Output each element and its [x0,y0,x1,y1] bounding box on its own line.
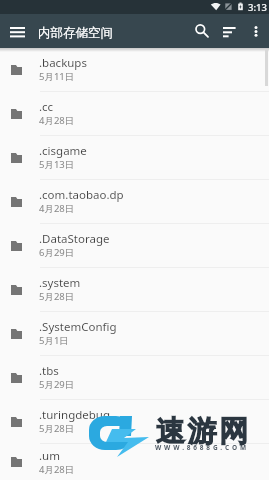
staticText: 6月29日 [39,246,75,259]
staticText: 5月11日 [39,70,75,83]
button[interactable]: More options [244,14,266,48]
staticText: 5月28日 [39,422,75,435]
button[interactable]: .tbs [0,356,269,399]
staticText: 4月28日 [39,202,75,215]
staticText: .system [39,275,81,291]
button[interactable]: .DataStorage [0,224,269,267]
staticText: 4月28日 [39,114,75,127]
button[interactable]: Sort [216,14,244,48]
staticText: 5月13日 [39,158,75,171]
staticText: .backups [39,55,87,71]
staticText: .turingdebug [39,407,111,423]
staticText: 4月28日 [39,463,75,476]
staticText: .com.taobao.dp [39,187,124,203]
staticText: 5月1日 [39,334,69,347]
button[interactable]: .cisgame [0,136,269,179]
button[interactable]: .system [0,268,269,311]
button[interactable]: Search [188,14,216,48]
staticText: .cc [39,99,54,115]
staticText: 5月28日 [39,290,75,303]
staticText: .cisgame [39,143,87,159]
staticText: 3:13 [248,1,267,14]
button[interactable]: .um [0,444,269,480]
staticText: .um [39,448,60,464]
button[interactable]: .turingdebug [0,400,269,443]
staticText: .tbs [39,363,59,379]
staticText: 内部存储空间 [38,25,113,41]
button[interactable]: .cc [0,92,269,135]
staticText: .DataStorage [39,231,110,247]
staticText: 速游网 [156,413,251,450]
button[interactable]: Menu [0,14,34,48]
button[interactable]: .com.taobao.dp [0,180,269,223]
button[interactable]: .SystemConfig [0,312,269,355]
staticText: W W W . 8 6 8 8 G . C O M [155,443,247,452]
button[interactable]: .backups [0,48,269,91]
staticText: .SystemConfig [39,319,117,335]
staticText: 5月29日 [39,378,75,391]
